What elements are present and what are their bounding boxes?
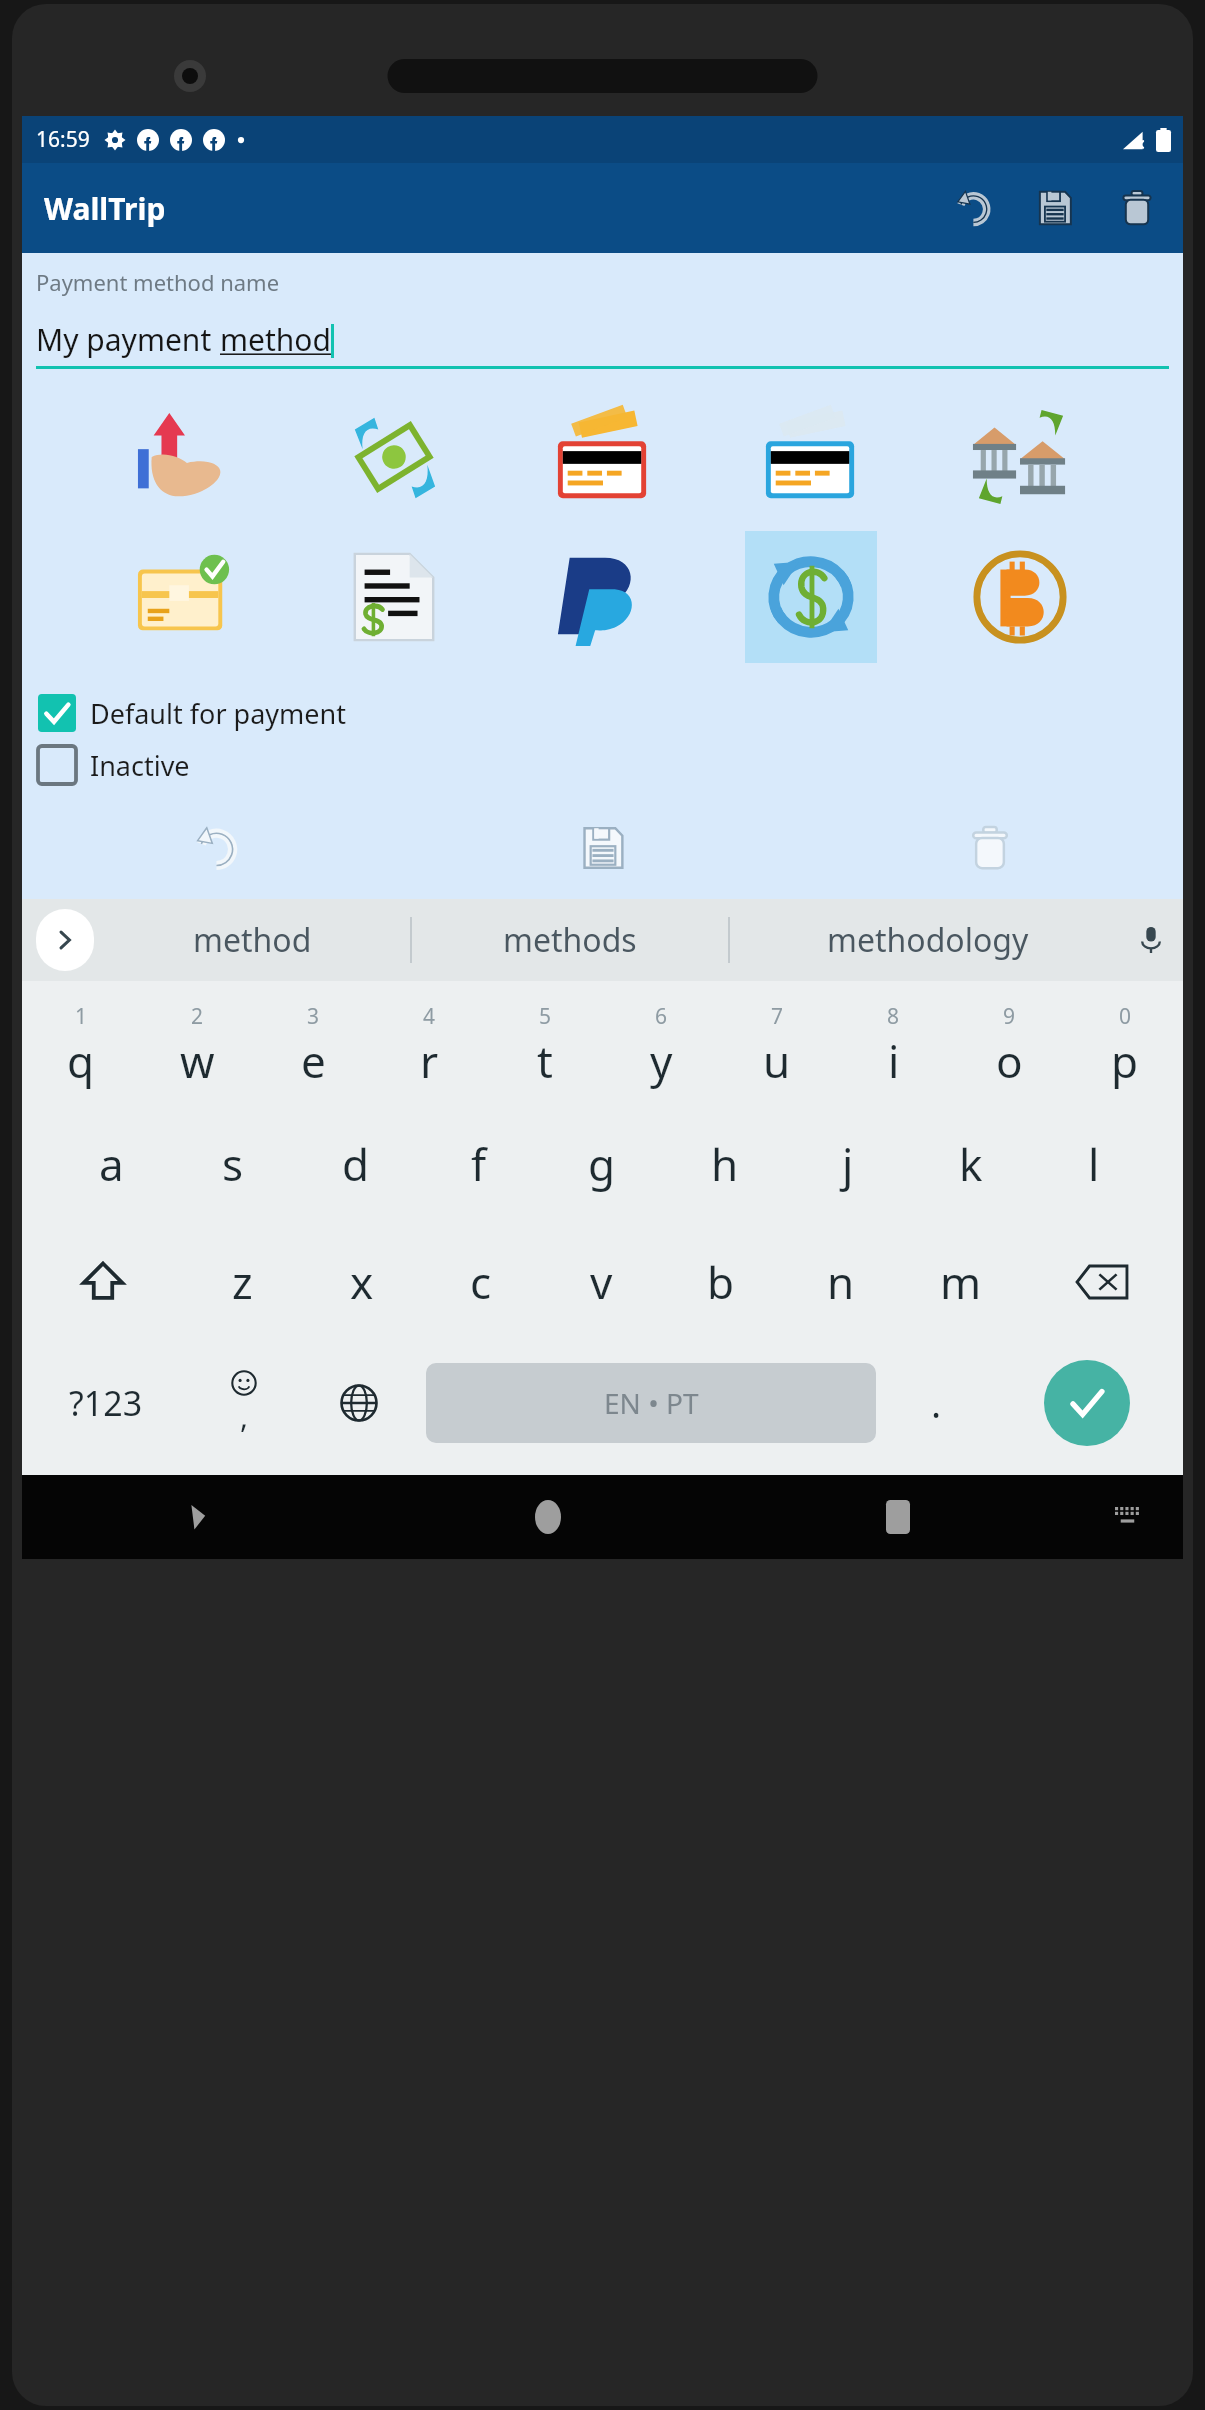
button[interactable]: Undo <box>22 805 409 891</box>
staticText: l <box>1088 1134 1100 1194</box>
button[interactable]: x <box>302 1223 421 1341</box>
staticText: b <box>707 1252 735 1312</box>
button[interactable]: m <box>901 1223 1021 1341</box>
button[interactable]: 2 <box>139 987 255 1105</box>
button[interactable]: Credit card <box>537 391 669 523</box>
button[interactable]: g <box>540 1105 663 1223</box>
button[interactable]: z <box>183 1223 302 1341</box>
staticText: p <box>1111 1031 1139 1091</box>
staticText: f <box>471 1134 487 1194</box>
button[interactable]: Back <box>22 1475 373 1559</box>
button[interactable]: 6 <box>603 987 719 1105</box>
staticText: q <box>67 1031 95 1091</box>
staticText: j <box>842 1134 854 1194</box>
staticText: d <box>342 1134 370 1194</box>
staticText: m <box>940 1252 982 1312</box>
staticText: Default for payment <box>90 695 347 732</box>
button[interactable]: ?123 <box>22 1341 189 1465</box>
staticText: . <box>931 1377 942 1429</box>
button[interactable]: k <box>909 1105 1032 1223</box>
button[interactable]: Prepaid card <box>119 531 251 663</box>
button[interactable]: s <box>172 1105 294 1223</box>
staticText: My payment <box>36 319 220 360</box>
button[interactable]: b <box>661 1223 781 1341</box>
button[interactable]: Default for payment <box>38 687 1183 739</box>
button[interactable]: Inactive <box>38 739 1183 791</box>
button[interactable]: 5 <box>487 987 603 1105</box>
staticText: , <box>240 1396 249 1437</box>
staticText: method <box>220 319 331 360</box>
staticText: 6 <box>655 1002 668 1031</box>
button[interactable]: Delete <box>1105 176 1169 240</box>
button[interactable]: n <box>781 1223 901 1341</box>
staticText: 3 <box>307 1002 320 1031</box>
staticText: 5 <box>539 1002 552 1031</box>
button[interactable]: Cash <box>119 391 251 523</box>
button[interactable]: a <box>50 1105 172 1223</box>
staticText: s <box>222 1134 244 1194</box>
button[interactable]: Save <box>409 805 796 891</box>
staticText: u <box>763 1031 791 1091</box>
button[interactable]: Undo <box>941 176 1005 240</box>
staticText: v <box>590 1252 613 1312</box>
staticText: 0 <box>1119 1002 1132 1031</box>
button[interactable]: Emoji <box>189 1341 298 1465</box>
staticText: 8 <box>887 1002 900 1031</box>
button[interactable]: v <box>541 1223 661 1341</box>
staticText: Inactive <box>90 747 190 784</box>
button[interactable]: Bitcoin <box>954 531 1086 663</box>
button[interactable]: Keyboard <box>1073 1475 1183 1559</box>
staticText: n <box>827 1252 855 1312</box>
button[interactable]: 7 <box>719 987 835 1105</box>
button[interactable]: Change language <box>298 1341 420 1465</box>
button[interactable]: 0 <box>1067 987 1183 1105</box>
button[interactable]: EN • PT <box>426 1363 876 1443</box>
button[interactable]: Voice input <box>1125 899 1177 981</box>
button[interactable]: . <box>882 1341 991 1465</box>
button[interactable]: Recent apps <box>723 1475 1073 1559</box>
button[interactable]: j <box>786 1105 909 1223</box>
button[interactable]: l <box>1032 1105 1155 1223</box>
staticText: i <box>888 1031 900 1091</box>
staticText: 9 <box>1003 1002 1016 1031</box>
button[interactable]: 3 <box>255 987 371 1105</box>
button[interactable]: 9 <box>951 987 1067 1105</box>
staticText: r <box>420 1031 439 1091</box>
button[interactable]: More suggestions <box>36 909 94 971</box>
staticText: g <box>588 1134 616 1194</box>
button[interactable]: Debit card <box>745 391 877 523</box>
staticText: t <box>537 1031 553 1091</box>
button[interactable]: 4 <box>371 987 487 1105</box>
staticText: w <box>180 1031 215 1091</box>
staticText: x <box>350 1252 374 1312</box>
button[interactable]: Bank transfer <box>954 391 1086 523</box>
button[interactable]: Save <box>1023 176 1087 240</box>
button[interactable]: Done <box>1044 1360 1130 1446</box>
staticText: method <box>193 918 312 962</box>
button[interactable]: Cash exchange <box>328 391 460 523</box>
staticText: 7 <box>771 1002 784 1031</box>
button[interactable]: Delete <box>796 805 1183 891</box>
button[interactable]: d <box>294 1105 417 1223</box>
button[interactable]: Backspace <box>1021 1223 1183 1341</box>
staticText: z <box>232 1252 253 1312</box>
button[interactable]: methodology <box>730 899 1125 981</box>
staticText: WallTrip <box>44 188 166 229</box>
button[interactable]: 8 <box>835 987 951 1105</box>
button[interactable]: Home <box>373 1475 723 1559</box>
button[interactable]: c <box>421 1223 541 1341</box>
button[interactable]: method <box>94 899 410 981</box>
button[interactable]: 1 <box>22 987 139 1105</box>
button[interactable]: PayPal <box>537 531 669 663</box>
staticText: ?123 <box>69 1380 143 1426</box>
button[interactable]: Money transfer <box>745 531 877 663</box>
button[interactable]: h <box>663 1105 786 1223</box>
staticText: methods <box>503 918 637 962</box>
staticText: y <box>650 1031 673 1091</box>
button[interactable]: Invoice <box>328 531 460 663</box>
staticText: c <box>470 1252 492 1312</box>
staticText: 2 <box>191 1002 204 1031</box>
button[interactable]: Shift <box>22 1223 183 1341</box>
button[interactable]: methods <box>412 899 728 981</box>
button[interactable]: f <box>417 1105 540 1223</box>
